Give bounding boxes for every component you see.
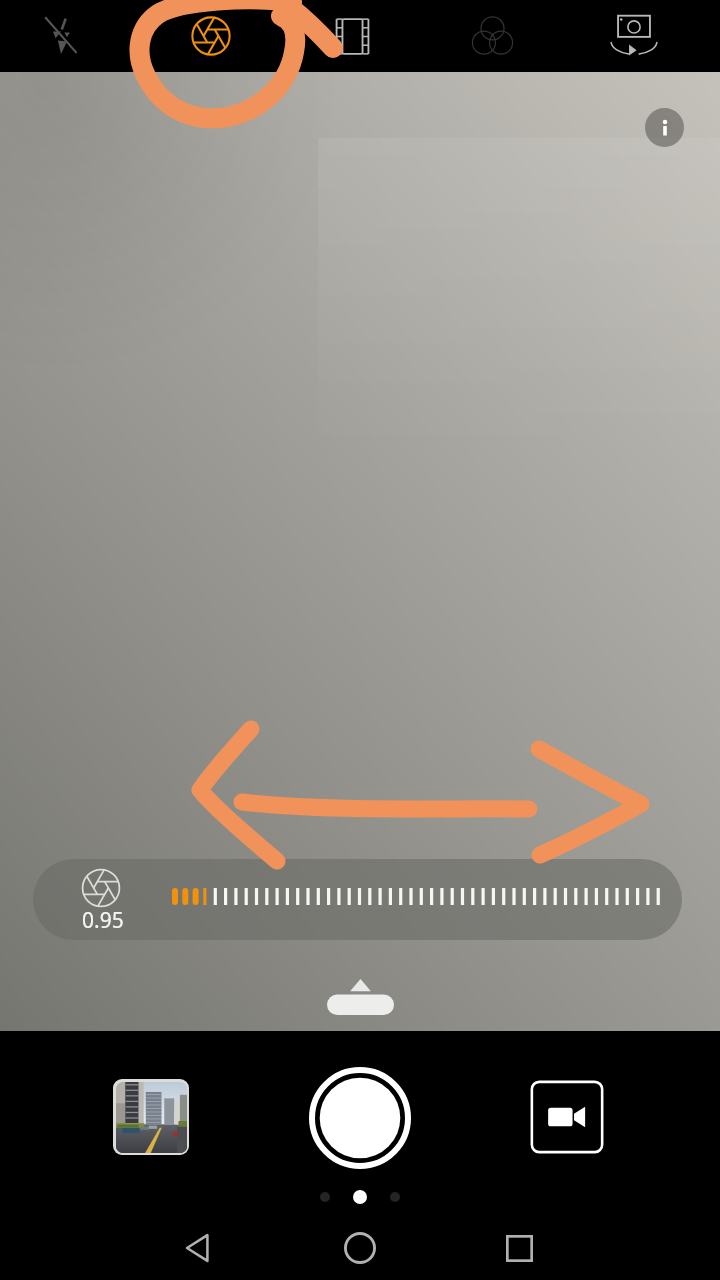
button[interactable]: Switch camera (555, 0, 713, 72)
button[interactable]: Recent apps (459, 1216, 579, 1280)
button[interactable]: Back (139, 1216, 259, 1280)
button[interactable]: Video mode (530, 1080, 604, 1154)
button[interactable]: Aperture value 0.95 (33, 859, 682, 940)
button[interactable]: Colour filter (422, 0, 562, 72)
button[interactable]: Home (300, 1216, 420, 1280)
button[interactable]: Flash off (0, 0, 121, 72)
button[interactable]: Info (645, 108, 684, 147)
button[interactable]: Film mode (282, 0, 422, 72)
button[interactable]: Expand settings (327, 979, 394, 1015)
button[interactable]: Take photo (309, 1067, 411, 1169)
button[interactable]: Gallery (113, 1079, 189, 1155)
staticText: 0.95 (82, 906, 124, 935)
button[interactable]: Aperture mode (140, 0, 282, 72)
